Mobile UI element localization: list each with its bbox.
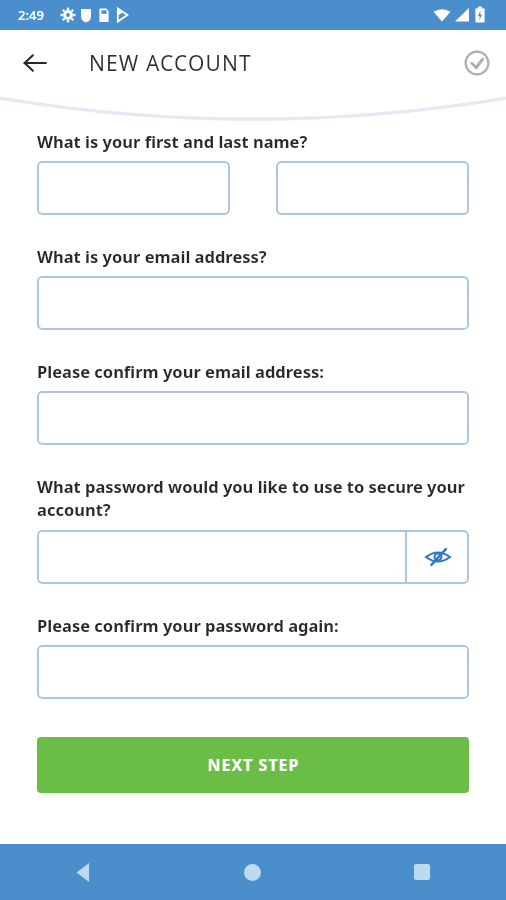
button[interactable]: [276, 161, 469, 215]
staticText: What password would you like to use to s…: [37, 475, 469, 521]
button[interactable]: NEXT STEP: [37, 737, 469, 793]
button[interactable]: [37, 645, 469, 699]
staticText: Please confirm your password again:: [37, 614, 339, 636]
staticText: NEXT STEP: [207, 754, 300, 776]
button[interactable]: Recent apps: [337, 844, 506, 900]
button[interactable]: [37, 161, 230, 215]
staticText: NEW ACCOUNT: [89, 49, 252, 78]
button[interactable]: [37, 276, 469, 330]
staticText: What is your email address?: [37, 245, 267, 267]
staticText: 2:49: [18, 6, 44, 24]
staticText: Please confirm your email address:: [37, 360, 324, 382]
button[interactable]: Back: [0, 844, 168, 900]
button[interactable]: [37, 530, 405, 584]
button[interactable]: Confirm: [455, 41, 499, 85]
button[interactable]: Home: [168, 844, 337, 900]
button[interactable]: Back: [11, 39, 59, 87]
staticText: What is your first and last name?: [37, 130, 308, 152]
button[interactable]: [37, 391, 469, 445]
button[interactable]: Show password: [407, 530, 469, 584]
